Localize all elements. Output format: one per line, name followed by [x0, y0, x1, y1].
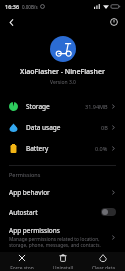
- staticText: Autostart: [9, 208, 38, 217]
- staticText: Battery: [26, 144, 49, 153]
- button[interactable]: Data usage: [0, 117, 125, 138]
- button[interactable]: Clear data: [85, 252, 121, 271]
- staticText: Permissions: [9, 171, 41, 178]
- staticText: Storage: [26, 102, 50, 111]
- staticText: 0.00B/s: [22, 4, 38, 10]
- button[interactable]: Storage: [0, 96, 125, 117]
- staticText: 16:36: [5, 3, 20, 10]
- staticText: XiaoFlasher - NineFlasher: [20, 67, 105, 77]
- staticText: 0.0%: [95, 145, 108, 152]
- staticText: Clear data: [92, 265, 115, 269]
- staticText: 31.94MB: [85, 103, 108, 110]
- staticText: Uninstall: [53, 265, 73, 269]
- staticText: Force stop: [10, 265, 34, 269]
- button[interactable]: App info: [107, 15, 121, 29]
- staticText: 0B: [101, 124, 108, 131]
- button[interactable]: Uninstall: [45, 252, 81, 271]
- staticText: Version 3.0: [50, 79, 76, 86]
- button[interactable]: App behavior: [0, 182, 125, 202]
- staticText: Data usage: [26, 123, 61, 132]
- staticText: App permissions: [9, 226, 60, 235]
- button[interactable]: Battery: [0, 138, 125, 159]
- button[interactable]: Autostart: [0, 202, 125, 222]
- button[interactable]: Force stop: [4, 252, 40, 271]
- staticText: Manage permissions related to location, …: [9, 236, 107, 248]
- button[interactable]: Back: [4, 15, 18, 29]
- staticText: App behavior: [9, 188, 50, 197]
- button[interactable]: App permissions: [0, 222, 125, 252]
